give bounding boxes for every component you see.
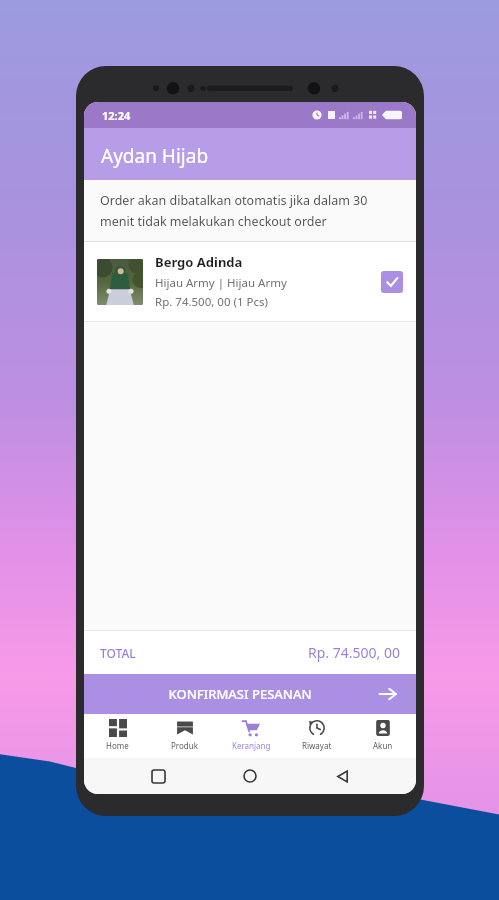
staticText: Akun <box>373 740 393 751</box>
staticText: KONFIRMASI PESANAN <box>168 685 312 703</box>
button[interactable]: KONFIRMASI PESANAN <box>84 674 416 714</box>
button[interactable]: Back <box>324 758 360 794</box>
button[interactable]: Select item <box>381 271 403 293</box>
staticText: Bergo Adinda <box>155 253 243 271</box>
button[interactable]: Riwayat <box>284 714 350 758</box>
staticText: Riwayat <box>302 740 332 751</box>
staticText: Home <box>106 740 129 751</box>
staticText: Hijau Army | Hijau Army <box>155 275 287 291</box>
staticText: Order akan dibatalkan otomatis jika dala… <box>100 192 400 229</box>
button[interactable]: Recents <box>140 758 176 794</box>
staticText: TOTAL <box>100 645 136 661</box>
staticText: 12:24 <box>102 108 131 123</box>
staticText: Rp. 74.500, 00 <box>308 643 400 662</box>
button[interactable]: Akun <box>350 714 416 758</box>
button[interactable]: Home <box>232 758 268 794</box>
button[interactable]: Bergo Adinda <box>84 242 416 321</box>
staticText: Produk <box>171 740 198 751</box>
button[interactable]: Home <box>84 714 151 758</box>
staticText: Keranjang <box>232 740 271 751</box>
staticText: Aydan Hijab <box>101 143 209 169</box>
button[interactable]: Produk <box>151 714 218 758</box>
button[interactable]: Keranjang <box>218 714 284 758</box>
staticText: Rp. 74.500, 00 (1 Pcs) <box>155 294 268 310</box>
